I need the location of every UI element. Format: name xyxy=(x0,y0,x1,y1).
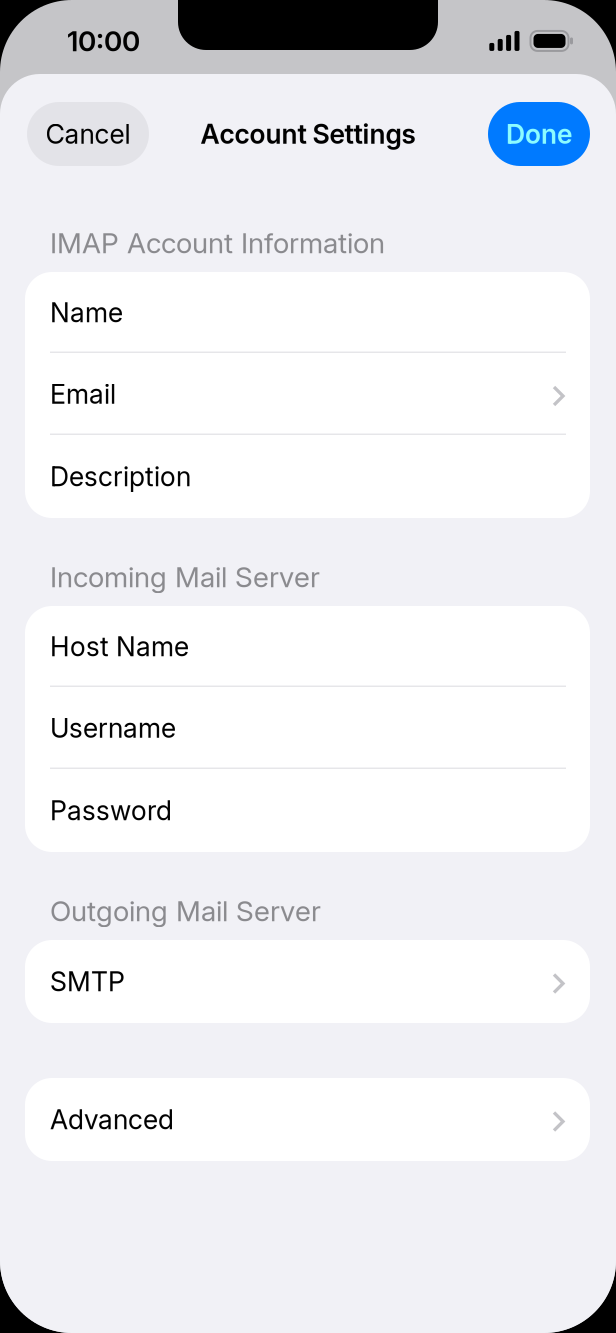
staticText: Name xyxy=(50,296,123,329)
button[interactable]: Email xyxy=(25,353,590,435)
button[interactable]: Advanced xyxy=(25,1078,590,1161)
button[interactable]: Name xyxy=(25,272,590,353)
staticText: Host Name xyxy=(50,630,189,663)
button[interactable]: SMTP xyxy=(25,940,590,1023)
staticText: Done xyxy=(506,118,572,150)
staticText: Outgoing Mail Server xyxy=(50,894,321,928)
button[interactable]: Description xyxy=(25,435,590,518)
staticText: Account Settings xyxy=(200,118,415,150)
staticText: Password xyxy=(50,794,172,827)
staticText: 10:00 xyxy=(67,24,140,58)
staticText: Cancel xyxy=(45,118,130,150)
button[interactable]: Password xyxy=(25,769,590,852)
staticText: IMAP Account Information xyxy=(50,226,385,260)
staticText: Advanced xyxy=(50,1103,174,1136)
staticText: Email xyxy=(50,378,116,410)
button[interactable]: Cancel xyxy=(27,102,149,166)
button[interactable]: Done xyxy=(488,102,590,166)
button[interactable]: Username xyxy=(25,687,590,769)
staticText: Incoming Mail Server xyxy=(50,560,320,594)
staticText: Description xyxy=(50,460,191,493)
staticText: SMTP xyxy=(50,965,125,998)
staticText: Username xyxy=(50,712,176,744)
button[interactable]: Host Name xyxy=(25,606,590,687)
